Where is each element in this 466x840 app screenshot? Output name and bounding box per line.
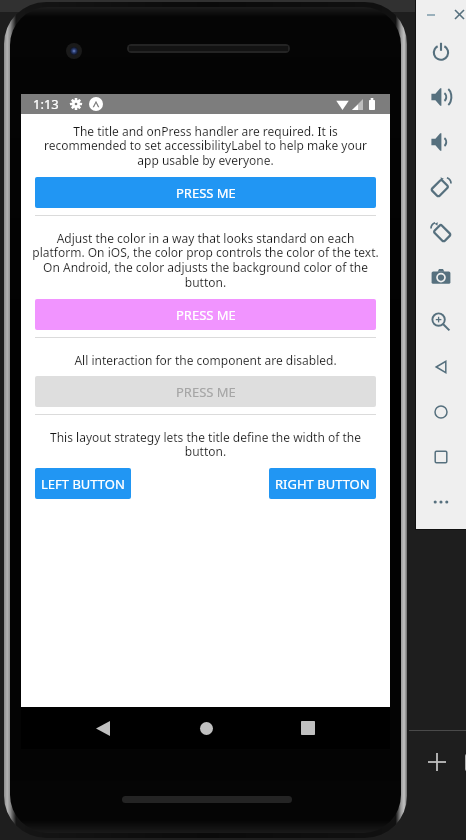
button[interactable]: Volume up [416,74,466,119]
button[interactable]: Zoom in [416,299,466,344]
button[interactable]: PRESS ME [35,376,376,407]
staticText: This layout strategy lets the title defi… [29,429,382,460]
button[interactable]: PRESS ME [35,177,376,208]
button[interactable]: Devices [456,744,466,780]
button[interactable]: Home [186,708,226,748]
staticText: All interaction for the component are di… [29,352,382,368]
staticText: Adjust the color in a way that looks sta… [29,230,382,291]
button[interactable]: Overview [416,434,466,479]
button[interactable]: Rotate right [416,209,466,254]
staticText: The title and onPress handler are requir… [29,123,382,169]
button[interactable]: Close [455,10,464,19]
button[interactable]: Power [416,29,466,74]
staticText: 1:13 [33,95,59,113]
staticText: LEFT BUTTON [41,475,125,493]
button[interactable]: LEFT BUTTON [35,468,131,499]
button[interactable]: PRESS ME [35,299,376,330]
button[interactable]: Add device [419,744,455,780]
button[interactable]: Volume down [416,119,466,164]
button[interactable]: Back [416,344,466,389]
button[interactable]: Minimize [427,10,435,20]
button[interactable]: More options [416,479,466,524]
staticText: PRESS ME [176,306,236,324]
button[interactable]: Back [83,708,123,748]
button[interactable]: Home [416,389,466,434]
staticText: PRESS ME [176,383,236,401]
button[interactable]: Rotate left [416,164,466,209]
button[interactable]: RIGHT BUTTON [269,468,376,499]
button[interactable]: Recents [288,708,328,748]
button[interactable]: Screenshot [416,254,466,299]
staticText: RIGHT BUTTON [275,475,370,493]
staticText: PRESS ME [176,184,236,202]
